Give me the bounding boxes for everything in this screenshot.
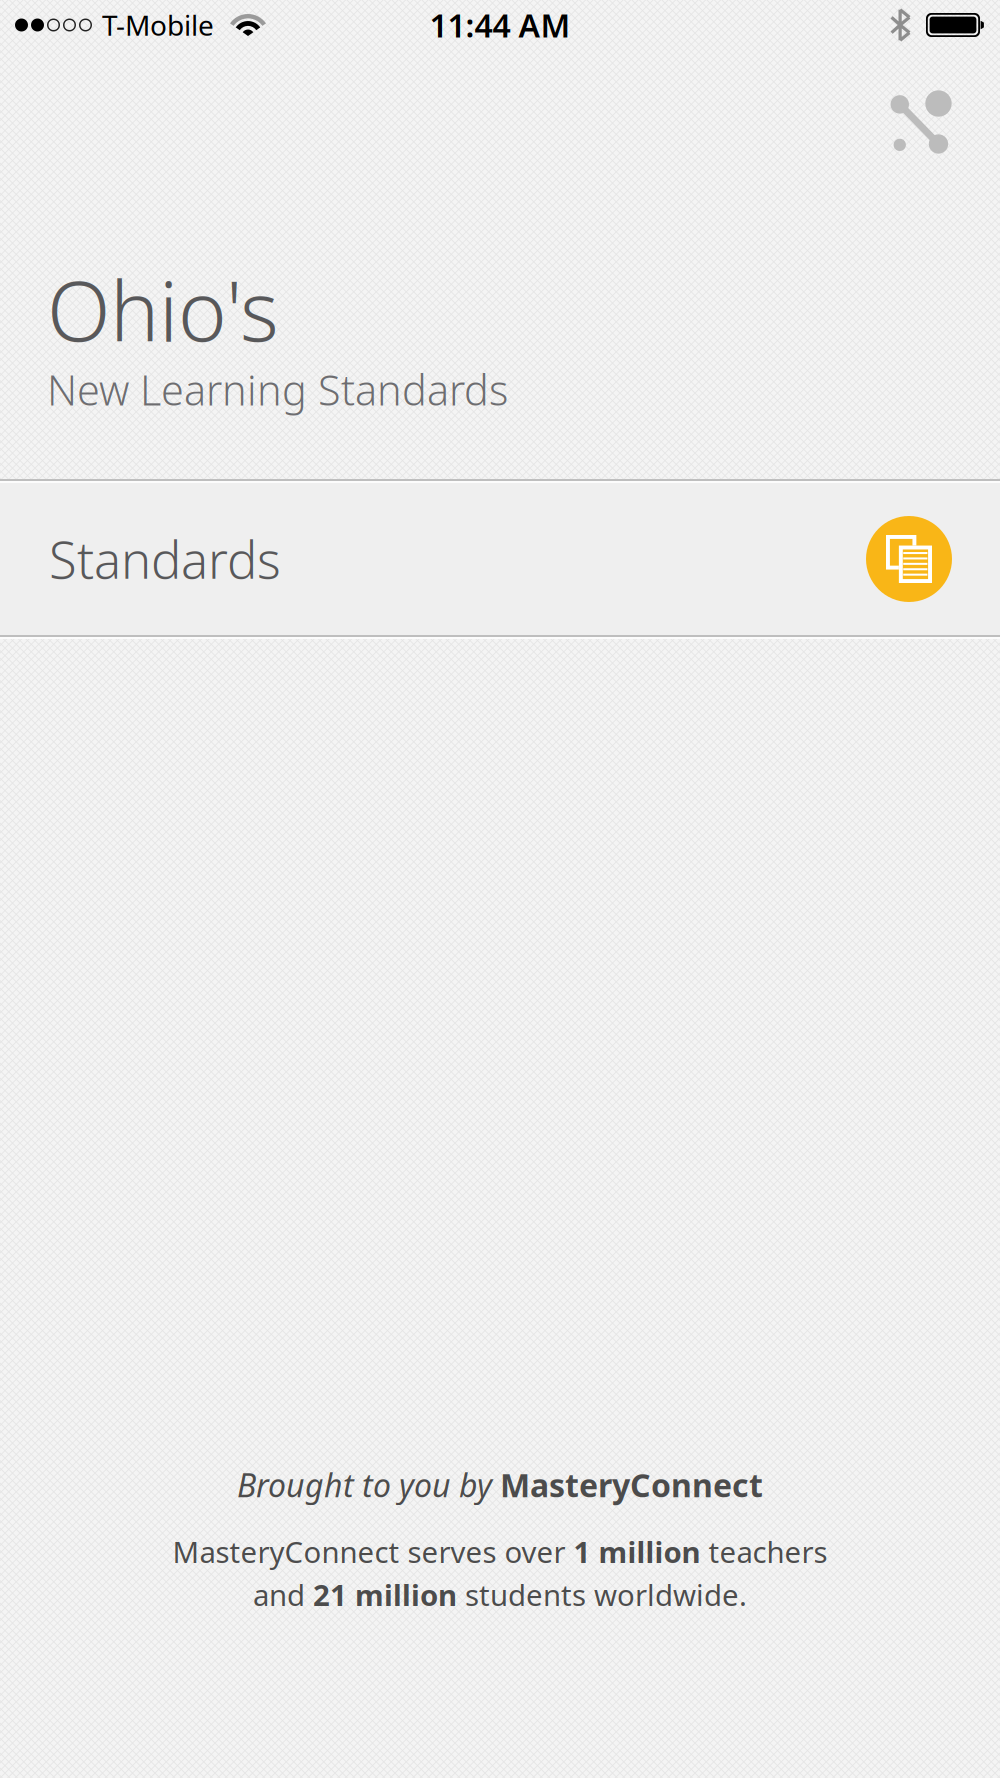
button[interactable]: Standards	[0, 483, 1000, 635]
staticText: Standards	[49, 525, 281, 593]
button[interactable]: Share	[868, 70, 972, 174]
staticText: T-Mobile	[102, 6, 214, 44]
staticText: and 21 million students worldwide.	[253, 1575, 747, 1614]
staticText: Ohio's	[47, 254, 279, 364]
staticText: New Learning Standards	[47, 362, 508, 417]
staticText: Brought to you by MasteryConnect	[237, 1464, 763, 1506]
staticText: MasteryConnect serves over 1 million tea…	[172, 1532, 827, 1571]
staticText: 11:44 AM	[429, 4, 570, 46]
